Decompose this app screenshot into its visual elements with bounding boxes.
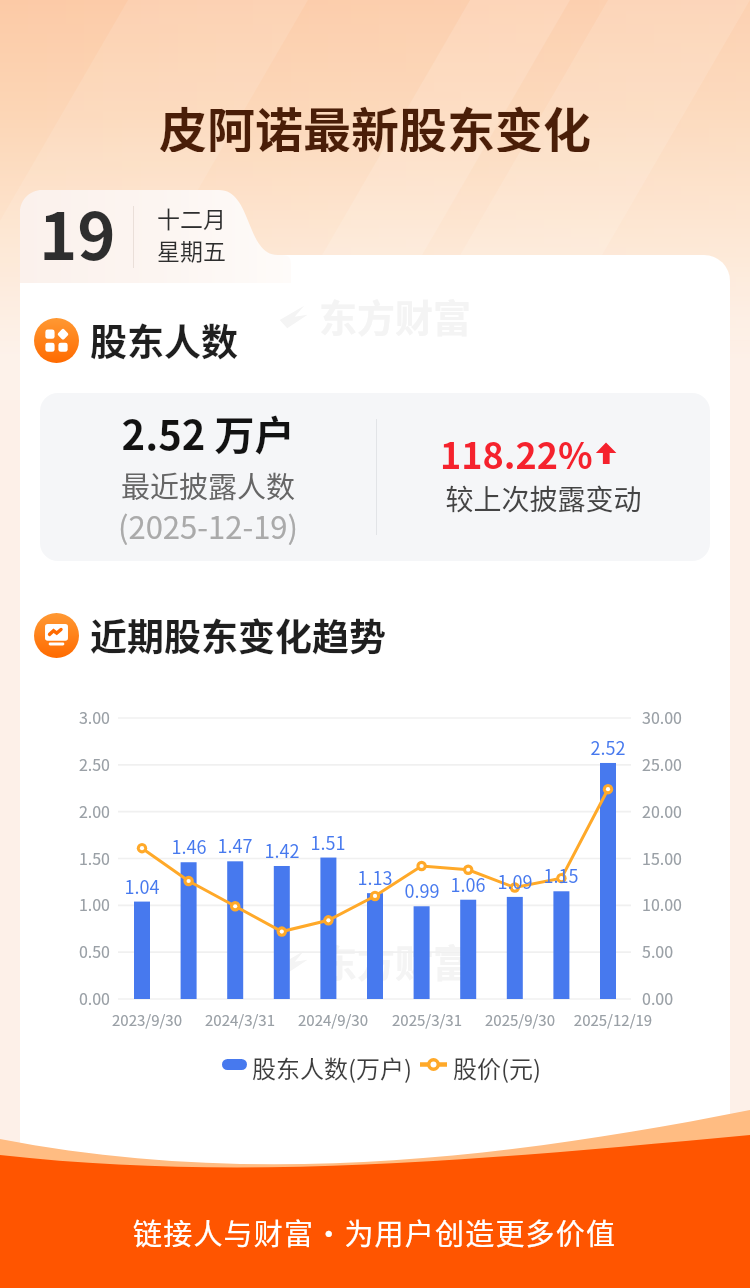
staticText: 1.51 — [288, 829, 368, 855]
staticText: 15.00 — [642, 846, 714, 869]
staticText: 股东人数 — [90, 313, 238, 367]
staticText: (2025-12-19) — [40, 503, 376, 548]
staticText: 3.00 — [38, 705, 110, 728]
staticText: 1.50 — [38, 846, 110, 869]
staticText: 0.99 — [382, 877, 462, 903]
staticText: 1.04 — [102, 873, 182, 899]
staticText: 1.09 — [475, 868, 555, 894]
staticText: 1.00 — [38, 892, 110, 915]
button[interactable]: 股东人数 — [34, 313, 238, 367]
staticText: 1.06 — [428, 871, 508, 897]
staticText: 0.50 — [38, 939, 110, 962]
staticText: 19 — [39, 185, 116, 278]
staticText: 链接人与财富·为用户创造更多价值 — [133, 1211, 617, 1253]
staticText: 股价(元) — [453, 1050, 542, 1085]
staticText: 1.42 — [242, 837, 322, 863]
staticText: 2025/12/19 — [558, 1009, 668, 1031]
staticText: 25.00 — [642, 752, 714, 775]
staticText: 2024/3/31 — [185, 1009, 295, 1031]
staticText: 20.00 — [642, 799, 714, 822]
staticText: 5.00 — [642, 939, 714, 962]
staticText: 10.00 — [642, 892, 714, 915]
staticText: 2025/9/30 — [465, 1009, 575, 1031]
staticText: 股东人数(万户) — [252, 1050, 413, 1085]
staticText: 1.47 — [195, 832, 275, 858]
staticText: 东方财富 — [319, 288, 472, 343]
staticText: 十二月 — [157, 201, 226, 234]
staticText: 1.13 — [335, 864, 415, 890]
staticText: 2024/9/30 — [278, 1009, 388, 1031]
staticText: 2025/3/31 — [372, 1009, 482, 1031]
staticText: 2.00 — [38, 799, 110, 822]
staticText: 2.52 — [568, 734, 648, 760]
staticText: 皮阿诺最新股东变化 — [159, 92, 592, 152]
staticText: 118.22% — [440, 427, 593, 479]
staticText: 较上次披露变动 — [377, 478, 710, 519]
staticText: 2023/9/30 — [92, 1009, 202, 1031]
staticText: 0.00 — [642, 986, 714, 1009]
staticText: 30.00 — [642, 705, 714, 728]
staticText: 东方财富 — [319, 933, 472, 988]
staticText: 1.15 — [521, 862, 601, 888]
staticText: 2.52 万户 — [40, 404, 376, 462]
staticText: 近期股东变化趋势 — [90, 608, 386, 662]
staticText: 1.46 — [149, 833, 229, 859]
button[interactable]: 近期股东变化趋势 — [34, 608, 386, 662]
staticText: 最近披露人数 — [40, 464, 376, 506]
staticText: 2.50 — [38, 752, 110, 775]
staticText: 0.00 — [38, 986, 110, 1009]
staticText: 星期五 — [157, 233, 226, 266]
